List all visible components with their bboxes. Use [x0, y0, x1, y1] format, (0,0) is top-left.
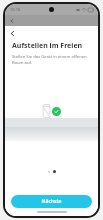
staticText: 10:18: [10, 7, 21, 12]
button[interactable]: Zurück: [7, 28, 17, 38]
button[interactable]: Zurück: [7, 16, 16, 25]
button[interactable]: Nächste: [11, 195, 92, 208]
staticText: Stellen Sie das Gerät in einem offenen R…: [12, 54, 88, 66]
staticText: Aufstellen im Freien: [12, 41, 83, 51]
staticText: Nächste: [41, 198, 62, 205]
